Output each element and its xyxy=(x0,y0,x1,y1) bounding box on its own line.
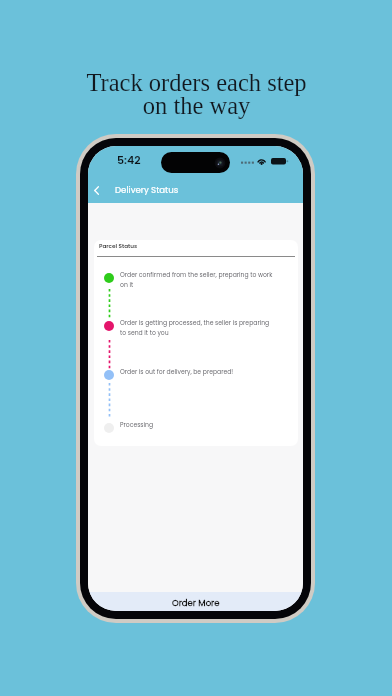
staticText: 5:42 xyxy=(117,152,141,167)
staticText: Order is out for delivery, be prepared! xyxy=(120,368,275,377)
button[interactable]: Order confirmed from the seller, prepari… xyxy=(94,273,298,291)
staticText: Delivery Status xyxy=(115,184,179,196)
staticText: Track orders each step on the way xyxy=(86,69,307,120)
staticText: Processing xyxy=(120,421,275,430)
staticText: Order confirmed from the seller, prepari… xyxy=(120,271,275,289)
button[interactable]: Processing xyxy=(94,423,298,433)
button[interactable]: Back xyxy=(88,179,108,202)
button[interactable]: Order More xyxy=(88,592,303,611)
staticText: Order More xyxy=(172,597,220,609)
staticText: Order is getting processed, the seller i… xyxy=(120,319,275,337)
button[interactable]: Order is out for delivery, be prepared! xyxy=(94,370,298,380)
staticText: Parcel Status xyxy=(99,242,138,250)
button[interactable]: Order is getting processed, the seller i… xyxy=(94,321,298,339)
